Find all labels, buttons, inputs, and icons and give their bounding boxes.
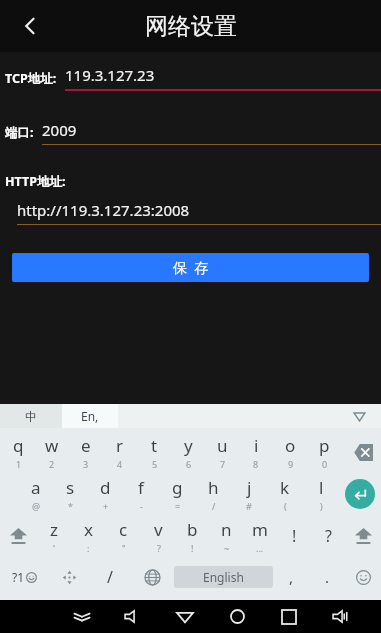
button[interactable]: Hide keyboard — [56, 600, 107, 633]
staticText: 0 — [322, 458, 328, 470]
button[interactable]: Volume down — [107, 600, 159, 633]
staticText: - — [140, 500, 143, 512]
staticText: 1 — [16, 458, 22, 470]
staticText: x — [84, 518, 93, 541]
button[interactable]: s — [53, 473, 88, 515]
button[interactable]: , — [273, 557, 309, 597]
button[interactable]: Emoji — [345, 557, 381, 597]
button[interactable]: Shift — [345, 515, 381, 557]
staticText: ?1 — [12, 569, 25, 585]
button[interactable]: h — [195, 473, 231, 515]
staticText: / — [212, 500, 216, 512]
button[interactable]: i — [239, 431, 273, 473]
button[interactable]: Symbols — [0, 557, 48, 597]
button[interactable]: Shift — [0, 515, 36, 557]
button[interactable]: . — [309, 557, 345, 597]
staticText: i — [254, 434, 259, 457]
button[interactable]: b — [175, 515, 209, 557]
staticText: ! — [191, 542, 194, 554]
button[interactable]: 端口: — [0, 116, 381, 148]
button[interactable]: f — [123, 473, 159, 515]
button[interactable]: Enter — [339, 473, 381, 515]
button[interactable]: TCP地址: — [0, 62, 381, 94]
staticText: = — [175, 500, 181, 512]
staticText: 5 — [152, 458, 158, 470]
button[interactable]: n — [209, 515, 243, 557]
staticText: y — [184, 434, 193, 457]
button[interactable]: y — [171, 431, 205, 473]
button[interactable]: Back — [159, 600, 211, 633]
button[interactable]: Collapse keyboard — [337, 404, 381, 428]
button[interactable]: u — [205, 431, 239, 473]
button[interactable]: p — [307, 431, 341, 473]
staticText: ? — [157, 542, 161, 554]
button[interactable]: / — [90, 557, 130, 597]
staticText: a — [31, 476, 41, 499]
button[interactable]: x — [71, 515, 106, 557]
staticText: m — [252, 518, 268, 541]
staticText: / — [107, 566, 113, 588]
button[interactable]: c — [106, 515, 141, 557]
staticText: g — [172, 476, 183, 499]
button[interactable]: m — [243, 515, 277, 557]
staticText: English — [203, 569, 244, 585]
button[interactable]: English — [174, 566, 273, 588]
staticText: v — [154, 518, 163, 541]
staticText: TCP地址: — [5, 70, 57, 87]
staticText: ! — [292, 525, 297, 547]
staticText: ) — [320, 500, 323, 512]
button[interactable]: HTTP地址: — [0, 173, 381, 225]
staticText: 保 存 — [173, 258, 209, 277]
button[interactable]: t — [137, 431, 171, 473]
button[interactable]: q — [2, 431, 35, 473]
staticText: h — [208, 476, 219, 499]
button[interactable]: 中 — [0, 404, 62, 428]
button[interactable]: Home — [211, 600, 263, 633]
staticText: HTTP地址: — [5, 173, 66, 190]
button[interactable]: e — [69, 431, 103, 473]
staticText: e — [81, 434, 91, 457]
staticText: ~ — [224, 542, 230, 554]
button[interactable]: g — [159, 473, 195, 515]
button[interactable]: En, — [62, 404, 118, 428]
button[interactable]: r — [103, 431, 137, 473]
button[interactable]: Recent apps — [263, 600, 315, 633]
button[interactable]: Move cursor — [48, 557, 90, 597]
button[interactable]: ! — [277, 515, 311, 557]
staticText: l — [319, 476, 324, 499]
staticText: w — [45, 434, 59, 457]
button[interactable]: o — [273, 431, 307, 473]
staticText: c — [119, 518, 128, 541]
staticText: @ — [32, 500, 41, 512]
button[interactable]: Volume up — [315, 600, 367, 633]
button[interactable]: d — [88, 473, 123, 515]
staticText: r — [116, 434, 124, 457]
button[interactable]: ? — [311, 515, 345, 557]
staticText: z — [50, 518, 58, 541]
staticText: n — [221, 518, 232, 541]
button[interactable]: a — [18, 473, 53, 515]
staticText: 2 — [49, 458, 55, 470]
button[interactable]: l — [303, 473, 339, 515]
staticText: o — [285, 434, 296, 457]
button[interactable]: Back — [8, 4, 52, 48]
staticText: b — [187, 518, 198, 541]
staticText: 9 — [288, 458, 294, 470]
staticText: 6 — [186, 458, 192, 470]
button[interactable]: z — [36, 515, 71, 557]
staticText: ? — [325, 525, 332, 547]
button[interactable]: j — [231, 473, 267, 515]
staticText: En, — [81, 408, 99, 424]
button[interactable]: Backspace — [341, 431, 381, 473]
staticText: 端口: — [5, 124, 34, 141]
button[interactable]: k — [267, 473, 303, 515]
button[interactable]: w — [35, 431, 69, 473]
staticText: 2009 — [42, 120, 77, 140]
staticText: q — [13, 434, 24, 457]
staticText: 4 — [117, 458, 123, 470]
staticText: ... — [256, 542, 264, 554]
button[interactable]: 保 存 — [12, 253, 369, 282]
button[interactable]: Change language — [130, 557, 174, 597]
staticText: . — [325, 567, 330, 587]
button[interactable]: v — [141, 515, 175, 557]
